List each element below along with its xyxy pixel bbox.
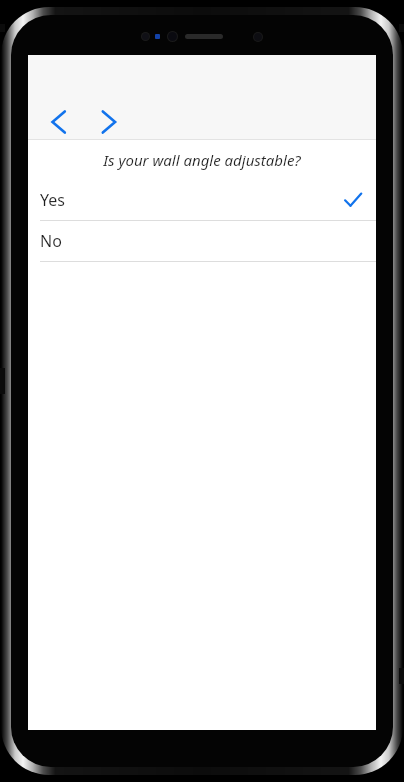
staticText: Yes	[40, 189, 65, 211]
button[interactable]: Yes	[28, 180, 376, 221]
button[interactable]: Previous question	[36, 100, 80, 144]
staticText: No	[40, 230, 62, 252]
button[interactable]: No	[28, 221, 376, 262]
staticText: Is your wall angle adjustable?	[103, 150, 301, 170]
button[interactable]: Next question	[86, 100, 130, 144]
